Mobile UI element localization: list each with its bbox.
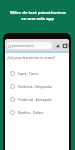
button[interactable]: Suave - Tierno bbox=[10, 67, 66, 80]
button[interactable]: Prudencial - Arriesgado bbox=[10, 93, 66, 106]
staticText: en una sola app bbox=[21, 16, 54, 22]
button[interactable]: Tabs bbox=[62, 43, 67, 48]
button[interactable]: psicotecnicos.co bbox=[7, 42, 52, 49]
staticText: Miles de test psicotécnicos bbox=[10, 10, 66, 16]
button[interactable]: Tendencia - Vanguardia bbox=[10, 80, 66, 93]
staticText: Prudencial - Arriesgado bbox=[18, 98, 52, 102]
button[interactable]: Benéfico - Dañino bbox=[10, 106, 66, 119]
staticText: Tendencia - Vanguardia bbox=[18, 85, 52, 89]
staticText: ¿Qué juego de antónimos es correcto? bbox=[7, 56, 56, 60]
staticText: Suave - Tierno bbox=[18, 72, 39, 76]
button[interactable]: Share bbox=[55, 43, 60, 48]
staticText: Benéfico - Dañino bbox=[18, 111, 44, 115]
staticText: psicotecnicos.co bbox=[12, 44, 35, 48]
